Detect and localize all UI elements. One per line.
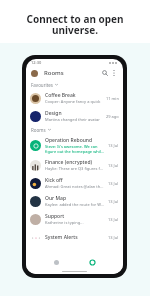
button[interactable]: Our Map bbox=[26, 192, 123, 210]
staticText: Support bbox=[45, 213, 65, 220]
button[interactable]: Finance (encrypted) bbox=[26, 156, 123, 174]
staticText: 11 min bbox=[106, 96, 119, 101]
staticText: Favourites bbox=[31, 82, 53, 88]
button[interactable]: Chats bbox=[51, 257, 61, 267]
staticText: Coffee Break bbox=[45, 92, 76, 99]
staticText: 13 Jul bbox=[108, 143, 119, 148]
button[interactable]: Design bbox=[26, 107, 123, 125]
button[interactable]: Operation Rebound bbox=[26, 134, 123, 156]
staticText: Operation Rebound bbox=[45, 137, 93, 144]
staticText: 13 Jul bbox=[108, 217, 119, 222]
button[interactable]: Kick off bbox=[26, 174, 123, 192]
staticText: Katherine is typing... bbox=[45, 220, 84, 225]
staticText: Kaylee: added the route for Wednesday bbox=[45, 202, 105, 207]
staticText: 13 Jul bbox=[108, 181, 119, 186]
staticText: Martina changed their avatar bbox=[45, 117, 100, 122]
staticText: Connect to an open universe. bbox=[26, 12, 124, 37]
staticText: 13 Jul bbox=[108, 163, 119, 168]
staticText: Cooper: Anyone fancy a quick bbox=[45, 99, 101, 104]
staticText: Design bbox=[45, 110, 62, 117]
staticText: 13 Jul bbox=[108, 199, 119, 204]
button[interactable]: Rooms bbox=[87, 257, 97, 267]
staticText: System Alerts bbox=[45, 234, 78, 241]
staticText: Ahmad: Great notes @alan thank you bbox=[45, 184, 105, 189]
staticText: Kick off bbox=[45, 177, 63, 184]
button[interactable]: Coffee Break bbox=[26, 89, 123, 107]
staticText: 13 Jul bbox=[108, 235, 119, 240]
button[interactable]: Profile bbox=[31, 70, 38, 77]
button[interactable]: Support bbox=[26, 210, 123, 228]
staticText: Steve: It's awesome. We can figure out t… bbox=[45, 144, 105, 154]
staticText: Finance (encrypted) bbox=[45, 159, 93, 166]
staticText: Our Map bbox=[45, 195, 67, 202]
staticText: Rooms bbox=[44, 69, 64, 77]
button[interactable]: More options bbox=[110, 69, 118, 77]
staticText: Haylie: These are Q3 figures for the mee… bbox=[45, 166, 105, 171]
staticText: 29 ago bbox=[106, 114, 119, 119]
button[interactable]: Search bbox=[100, 68, 110, 78]
staticText: Rooms bbox=[31, 127, 46, 133]
button[interactable]: System Alerts bbox=[26, 228, 123, 246]
staticText: 12:30 bbox=[31, 60, 42, 65]
